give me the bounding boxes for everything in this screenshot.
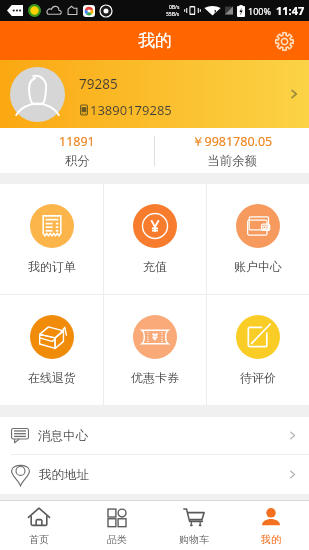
staticText: 积分	[65, 153, 90, 169]
staticText: 我的	[261, 533, 281, 546]
staticText: 11891	[59, 133, 95, 150]
staticText: 账户中心	[234, 259, 282, 274]
staticText: 我的	[138, 30, 172, 51]
button[interactable]: Settings	[271, 28, 297, 54]
button[interactable]: 79285	[0, 60, 309, 128]
staticText: 100%	[248, 5, 271, 17]
button[interactable]: 购物车	[155, 501, 232, 550]
button[interactable]: 优惠卡券	[104, 295, 206, 405]
staticText: 我的地址	[39, 467, 89, 483]
button[interactable]: 充值	[104, 184, 206, 294]
staticText: 0B/s	[169, 4, 180, 11]
staticText: 购物车	[179, 533, 209, 546]
button[interactable]: 我的地址	[0, 455, 309, 494]
staticText: ￥9981780.05	[192, 133, 273, 150]
staticText: 我的订单	[28, 259, 76, 274]
button[interactable]: 我的	[232, 501, 309, 550]
button[interactable]: 11891	[0, 128, 154, 173]
staticText: 55B/s	[166, 11, 180, 18]
button[interactable]: 首页	[0, 501, 78, 550]
staticText: 当前余额	[207, 153, 257, 169]
staticText: 品类	[107, 533, 127, 546]
staticText: 优惠卡券	[131, 370, 179, 385]
button[interactable]: 我的订单	[0, 184, 103, 294]
button[interactable]: 待评价	[207, 295, 309, 405]
button[interactable]: ￥9981780.05	[155, 128, 309, 173]
staticText: 待评价	[240, 370, 276, 385]
staticText: 在线退货	[28, 370, 76, 385]
staticText: 11:47	[276, 3, 305, 18]
staticText: 消息中心	[38, 428, 88, 444]
staticText: 充值	[143, 259, 167, 274]
staticText: 首页	[29, 533, 49, 546]
button[interactable]: 品类	[78, 501, 155, 550]
staticText: 13890179285	[90, 101, 172, 119]
button[interactable]: 账户中心	[207, 184, 309, 294]
staticText: 79285	[79, 75, 118, 93]
button[interactable]: 消息中心	[0, 417, 309, 454]
button[interactable]: 在线退货	[0, 295, 103, 405]
